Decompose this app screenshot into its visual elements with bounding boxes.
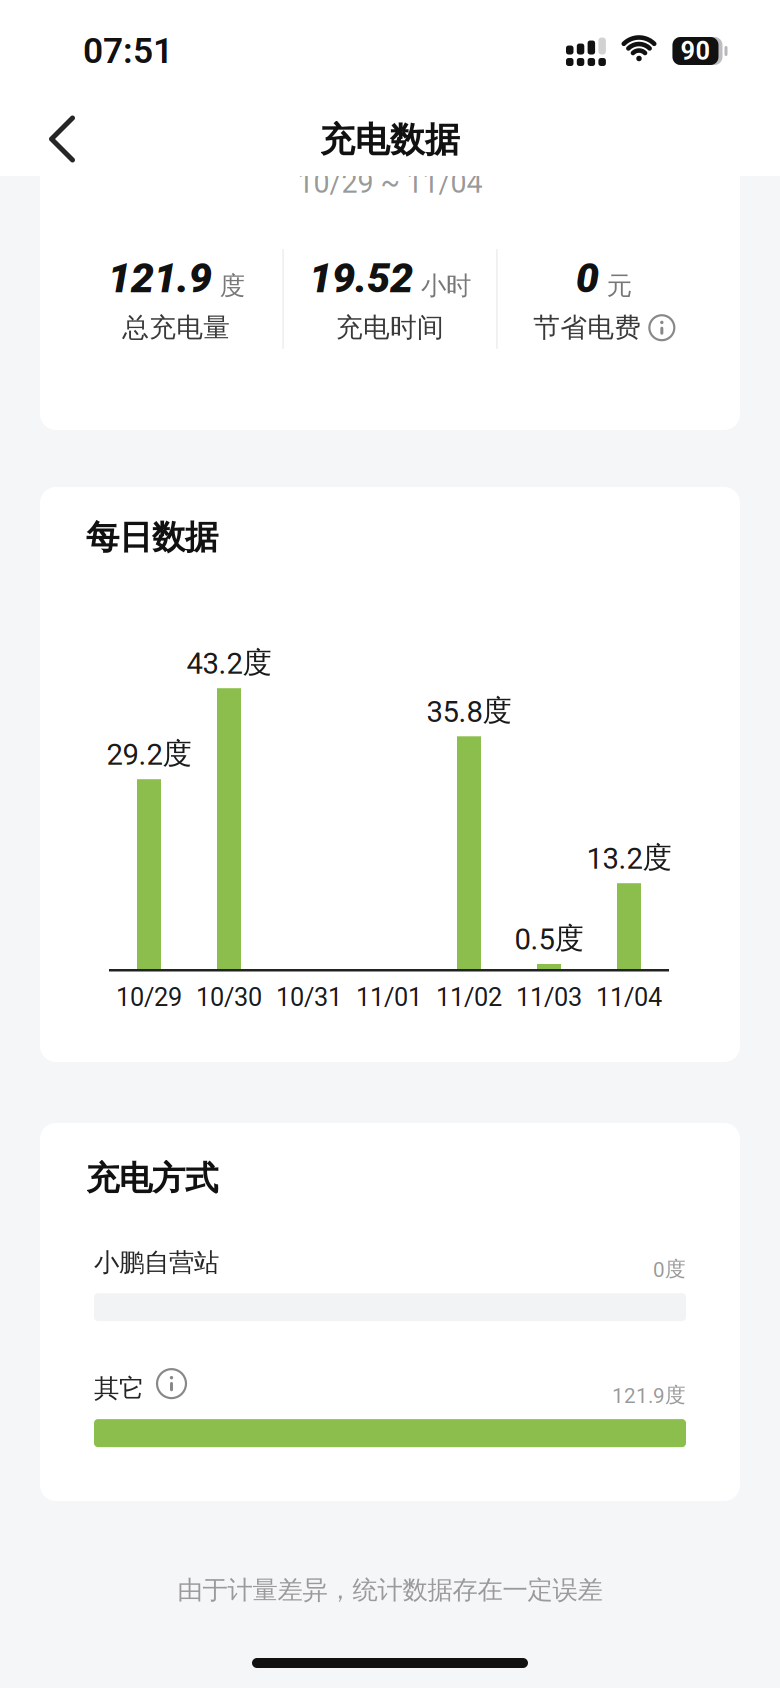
staticText: 小鹏自营站 bbox=[94, 1247, 219, 1278]
staticText: 13.2度 bbox=[586, 839, 671, 876]
staticText: 29.2度 bbox=[106, 735, 191, 772]
staticText: 由于计量差异，统计数据存在一定误差 bbox=[177, 1574, 602, 1605]
staticText: 10/29 bbox=[116, 982, 182, 1012]
staticText: 11/01 bbox=[356, 982, 422, 1012]
button[interactable]: 其它说明 bbox=[144, 1369, 186, 1404]
staticText: 0.5度 bbox=[514, 920, 583, 957]
staticText: 度 bbox=[220, 270, 245, 301]
staticText: 121.9度 bbox=[612, 1382, 686, 1408]
staticText: 10/31 bbox=[276, 982, 342, 1012]
staticText: 07:51 bbox=[83, 30, 173, 72]
staticText: 充电时间 bbox=[336, 311, 444, 344]
staticText: 小时 bbox=[421, 270, 471, 301]
staticText: 其它 bbox=[94, 1373, 144, 1404]
staticText: 充电数据 bbox=[320, 119, 460, 161]
staticText: 每日数据 bbox=[86, 517, 218, 558]
staticText: 11/03 bbox=[516, 982, 582, 1012]
staticText: 90 bbox=[680, 36, 710, 66]
staticText: 0 bbox=[576, 254, 599, 302]
staticText: 35.8度 bbox=[426, 692, 511, 729]
staticText: 43.2度 bbox=[186, 644, 271, 681]
staticText: 10/29 ~ 11/04 bbox=[297, 166, 482, 200]
button[interactable]: 返回 bbox=[37, 104, 86, 174]
button[interactable]: 节省电费说明 bbox=[649, 315, 674, 340]
staticText: 元 bbox=[607, 270, 632, 301]
staticText: 0度 bbox=[653, 1256, 686, 1282]
staticText: 节省电费 bbox=[533, 311, 641, 344]
staticText: 总充电量 bbox=[122, 311, 230, 344]
staticText: 11/04 bbox=[596, 982, 662, 1012]
staticText: 10/30 bbox=[196, 982, 262, 1012]
staticText: 19.52 bbox=[309, 254, 413, 302]
staticText: 121.9 bbox=[108, 254, 212, 302]
staticText: 充电方式 bbox=[86, 1158, 218, 1199]
staticText: 11/02 bbox=[436, 982, 502, 1012]
